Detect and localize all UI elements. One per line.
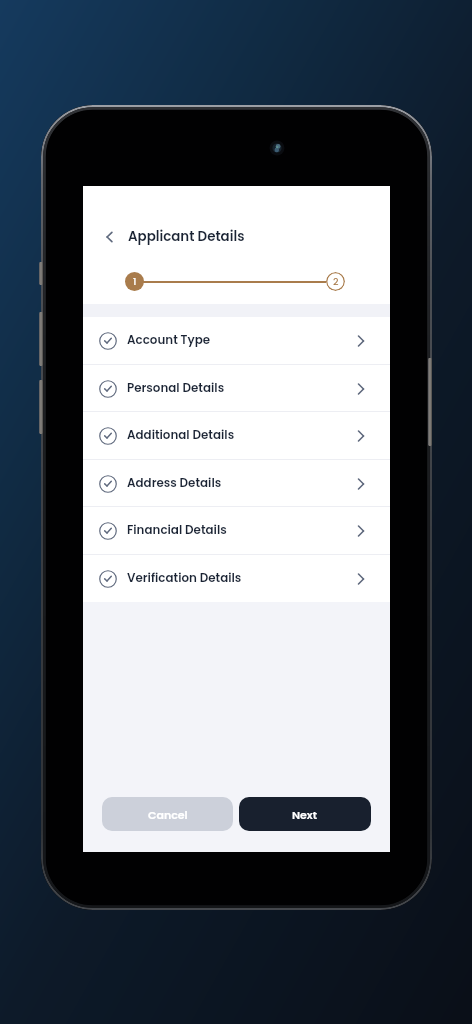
staticText: Applicant Details [128,227,245,246]
staticText: 1 [133,275,137,288]
staticText: 2 [333,275,339,288]
staticText: Additional Details [127,427,235,444]
button[interactable]: Back [96,224,122,250]
button[interactable]: Personal Details [83,365,390,412]
button[interactable]: Financial Details [83,507,390,554]
button[interactable]: Next [239,797,371,831]
button[interactable]: Cancel [102,797,233,831]
button[interactable]: Verification Details [83,555,390,602]
staticText: Financial Details [127,522,227,539]
staticText: Cancel [148,807,188,822]
button[interactable]: Address Details [83,460,390,507]
staticText: Verification Details [127,570,242,587]
staticText: Address Details [127,475,222,492]
button[interactable]: Account Type [83,317,390,364]
staticText: Next [292,807,318,822]
staticText: Personal Details [127,380,225,397]
staticText: Account Type [127,332,211,349]
button[interactable]: Additional Details [83,412,390,459]
